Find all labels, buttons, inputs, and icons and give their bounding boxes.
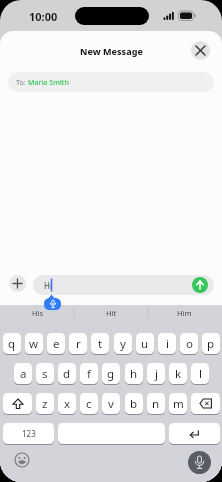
staticText: k (175, 366, 182, 382)
button[interactable] (191, 393, 220, 414)
staticText: c (86, 396, 92, 412)
staticText: To: (16, 77, 28, 87)
staticText: a (20, 366, 27, 382)
staticText: y (120, 336, 126, 352)
staticText: u (141, 336, 149, 352)
staticText: v (108, 396, 114, 412)
button[interactable]: l (191, 363, 209, 384)
staticText: d (63, 366, 71, 382)
button[interactable] (188, 451, 211, 474)
staticText: j (155, 366, 158, 382)
button[interactable]: u (136, 333, 154, 354)
staticText: h (130, 366, 138, 382)
button[interactable]: His (18, 306, 58, 319)
button[interactable]: To: (8, 72, 214, 92)
button[interactable]: b (125, 393, 143, 414)
button[interactable]: o (180, 333, 198, 354)
button[interactable]: v (102, 393, 120, 414)
button[interactable]: c (80, 393, 98, 414)
button[interactable]: h (125, 363, 143, 384)
button[interactable]: z (36, 393, 54, 414)
button[interactable] (191, 41, 210, 60)
button[interactable]: r (69, 333, 87, 354)
button[interactable]: y (114, 333, 132, 354)
button[interactable]: q (3, 333, 21, 354)
button[interactable]: Him (164, 306, 204, 319)
staticText: f (87, 366, 91, 382)
staticText: q (8, 336, 16, 352)
button[interactable]: t (91, 333, 109, 354)
button[interactable]: f (80, 363, 98, 384)
staticText: s (42, 366, 48, 382)
staticText: New Message (80, 45, 143, 57)
button[interactable]: p (202, 333, 220, 354)
staticText: x (64, 396, 71, 412)
button[interactable]: Hi (33, 275, 214, 295)
staticText: o (186, 336, 193, 352)
button[interactable]: a (14, 363, 32, 384)
staticText: 123 (22, 428, 36, 439)
staticText: His (32, 308, 44, 318)
staticText: e (53, 336, 60, 352)
staticText: b (130, 396, 138, 412)
button[interactable] (3, 393, 32, 414)
button[interactable]: k (169, 363, 187, 384)
button[interactable]: e (47, 333, 65, 354)
staticText: r (76, 336, 81, 352)
staticText: t (98, 336, 103, 352)
button[interactable]: d (58, 363, 76, 384)
staticText: p (207, 336, 215, 352)
button[interactable] (58, 423, 165, 444)
staticText: Maria Smith (28, 77, 69, 87)
button[interactable]: m (169, 393, 187, 414)
button[interactable]: x (58, 393, 76, 414)
staticText: g (107, 366, 115, 382)
staticText: i (166, 336, 169, 352)
button[interactable]: s (36, 363, 54, 384)
button[interactable] (169, 423, 220, 444)
button[interactable]: Hit (91, 306, 131, 319)
button[interactable]: w (25, 333, 43, 354)
button[interactable] (13, 451, 31, 469)
button[interactable]: 123 (3, 423, 54, 444)
staticText: Hit (106, 308, 117, 318)
staticText: Hi (44, 280, 52, 291)
staticText: m (173, 396, 184, 412)
button[interactable] (192, 277, 208, 293)
staticText: z (42, 396, 48, 412)
staticText: n (152, 396, 160, 412)
button[interactable]: g (102, 363, 120, 384)
button[interactable]: n (147, 393, 165, 414)
button[interactable]: j (147, 363, 165, 384)
staticText: Him (177, 308, 192, 318)
button[interactable] (9, 275, 26, 292)
staticText: w (29, 336, 39, 352)
button[interactable]: i (158, 333, 176, 354)
staticText: l (199, 366, 202, 382)
staticText: 10:00 (29, 9, 58, 24)
